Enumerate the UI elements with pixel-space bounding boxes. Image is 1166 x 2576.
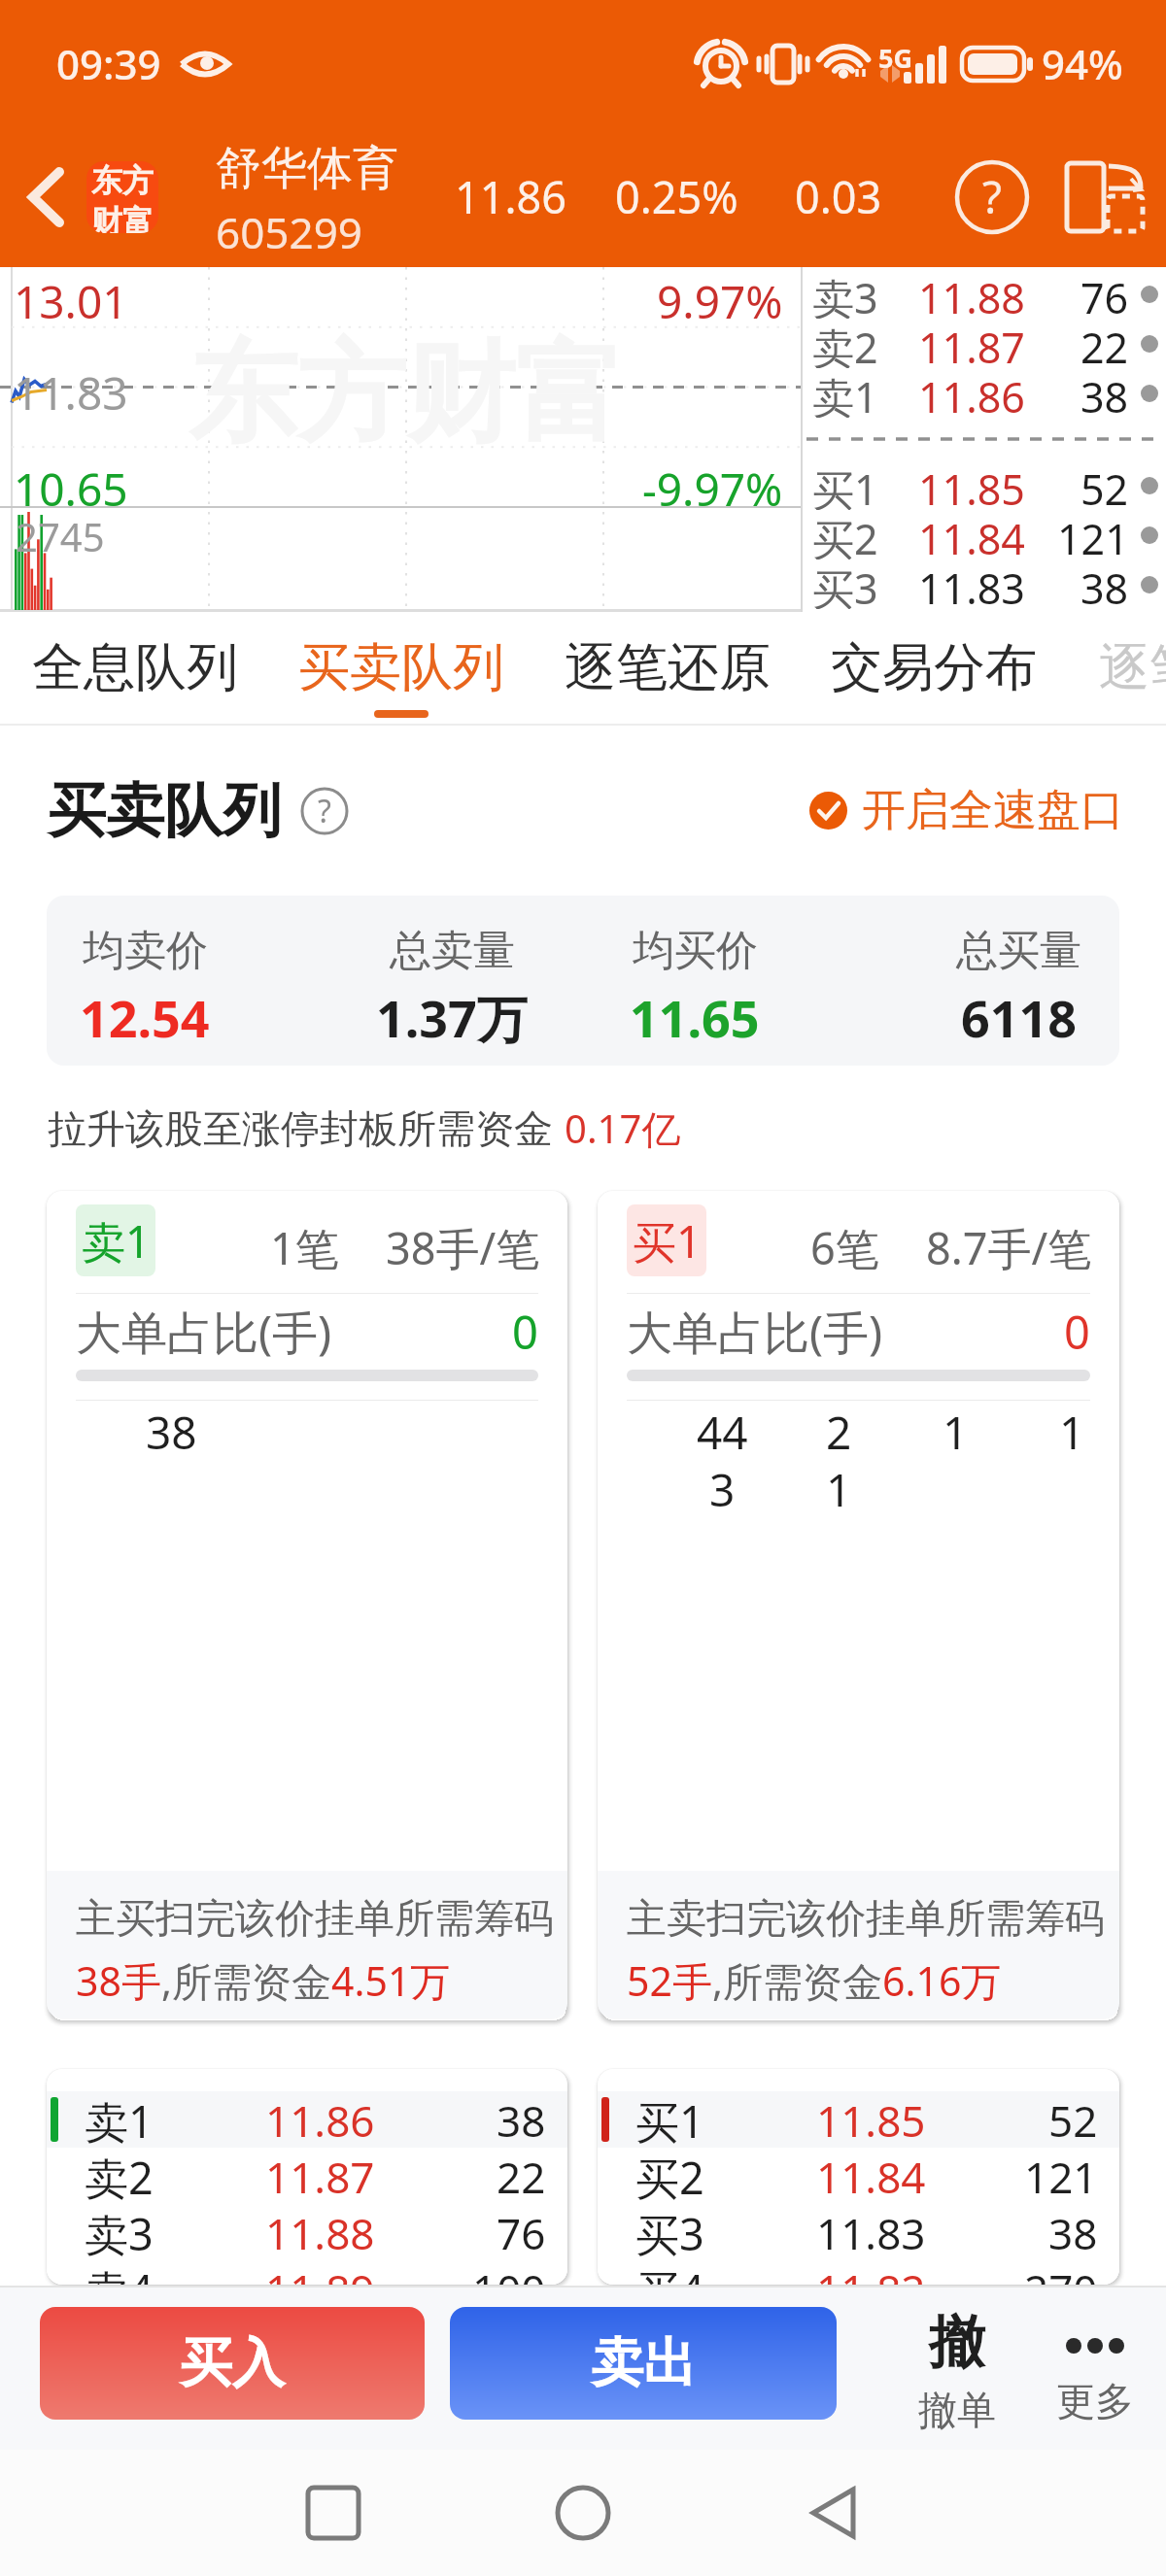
button[interactable]: 买2 (598, 2148, 1119, 2204)
button[interactable]: Back (0, 126, 91, 267)
button[interactable]: 卖出 (450, 2307, 837, 2420)
staticText: 22 (497, 2148, 546, 2204)
staticText: 6.16万 (882, 1953, 1002, 2008)
staticText: 卖2 (85, 2148, 154, 2204)
staticText: 大单占比(手) (627, 1301, 883, 1363)
button[interactable]: 逐笔 (1099, 612, 1166, 724)
staticText: 财富 (91, 202, 154, 233)
staticText: 38手 (76, 1953, 161, 2008)
staticText: 11.87 (918, 319, 1025, 368)
staticText: 撤单 (918, 2386, 996, 2434)
staticText: 0.03 (795, 167, 882, 226)
staticText: 11.84 (918, 510, 1025, 559)
staticText: 买4 (635, 2260, 704, 2285)
button[interactable]: Back (770, 2450, 896, 2576)
staticText: 11.83 (14, 362, 128, 424)
staticText: 更多 (1056, 2377, 1134, 2425)
button[interactable]: 买4 (598, 2260, 1119, 2285)
staticText: 0.17亿 (565, 1102, 681, 1155)
staticText: 9.97% (657, 271, 783, 332)
staticText: 12.54 (80, 983, 210, 1052)
staticText: 卖3 (812, 269, 878, 319)
staticText: 11.89 (265, 2260, 375, 2285)
staticText: 11.86 (918, 368, 1025, 418)
button[interactable]: 卖2 (47, 2148, 567, 2204)
staticText: 11.88 (265, 2204, 375, 2260)
staticText: 大单占比(手) (76, 1301, 332, 1363)
staticText: 11.88 (918, 269, 1025, 319)
staticText: 6118 (961, 983, 1077, 1052)
staticText: 11.86 (455, 167, 567, 226)
staticText: 东方 (91, 161, 154, 200)
staticText: 11.83 (816, 2204, 926, 2260)
staticText: 卖2 (812, 319, 878, 368)
button[interactable]: 交易分布 (831, 612, 1037, 724)
staticText: 38 (146, 1402, 197, 1459)
staticText: 94% (1042, 36, 1123, 91)
staticText: 09:39 (56, 36, 161, 91)
staticText: 52手 (627, 1953, 712, 2008)
staticText: 0 (512, 1301, 538, 1363)
button[interactable]: 逐笔还原 (565, 612, 771, 724)
button[interactable]: 买1 (598, 2091, 1119, 2148)
button[interactable]: 撤 (894, 2288, 1020, 2450)
staticText: 主卖扫完该价挂单所需筹码 (627, 1894, 1105, 1945)
staticText: 13.01 (14, 271, 128, 332)
staticText: 1.37万 (376, 983, 528, 1052)
staticText: 270 (1024, 2260, 1098, 2285)
staticText: 逐笔 (1099, 636, 1166, 700)
staticText: 5G (878, 40, 912, 76)
staticText: 22 (1080, 319, 1129, 368)
staticText: 11.65 (630, 983, 760, 1052)
staticText: 买卖队列 (298, 635, 504, 700)
button[interactable]: Info (300, 787, 349, 835)
button[interactable]: Recents (270, 2450, 396, 2576)
button[interactable]: 买3 (598, 2204, 1119, 2260)
staticText: 买2 (635, 2148, 704, 2204)
staticText: 38 (497, 2091, 546, 2148)
button[interactable]: Split screen (1049, 126, 1158, 267)
staticText: 0 (1064, 1301, 1090, 1363)
button[interactable]: East Money (86, 161, 158, 233)
staticText: 东方财富 (189, 325, 624, 462)
staticText: 买卖队列 (48, 774, 281, 848)
staticText: 全息队列 (32, 635, 238, 700)
staticText: 撤 (929, 2307, 985, 2378)
button[interactable]: 卖4 (47, 2260, 567, 2285)
button[interactable]: Help (934, 126, 1050, 267)
staticText: 卖4 (85, 2260, 154, 2285)
button[interactable]: 买入 (40, 2307, 425, 2420)
button[interactable]: 买1 (803, 460, 1166, 510)
button[interactable]: More (1032, 2288, 1158, 2450)
staticText: 0.25% (615, 167, 738, 226)
staticText: 均卖价 (83, 925, 208, 977)
staticText: 买3 (635, 2204, 704, 2260)
button[interactable]: 买卖队列 (298, 612, 504, 724)
staticText: 卖3 (85, 2204, 154, 2260)
staticText: 拉升该股至涨停封板所需资金 (48, 1104, 553, 1153)
staticText: 52 (1048, 2091, 1098, 2148)
staticText: 1 (1059, 1402, 1085, 1459)
staticText: 11.82 (816, 2260, 926, 2285)
staticText: 卖1 (82, 1211, 151, 1271)
button[interactable]: 卖3 (803, 269, 1166, 319)
button[interactable]: 卖1 (47, 2091, 567, 2148)
button[interactable]: 全息队列 (32, 612, 238, 724)
staticText: 1 (943, 1402, 969, 1459)
staticText: 8.7手/笔 (926, 1218, 1092, 1277)
staticText: 2 (826, 1402, 852, 1459)
staticText: 1笔 (270, 1218, 339, 1277)
button[interactable]: 卖3 (47, 2204, 567, 2260)
button[interactable]: 开启全速盘口 (809, 783, 1124, 838)
staticText: 605299 (216, 203, 363, 261)
staticText: 3 (709, 1459, 736, 1516)
staticText: 买3 (812, 559, 878, 609)
staticText: ? (318, 790, 331, 832)
button[interactable]: 卖2 (803, 319, 1166, 368)
button[interactable]: 买3 (803, 559, 1166, 609)
button[interactable]: 卖1 (803, 368, 1166, 418)
button[interactable]: 买2 (803, 510, 1166, 559)
button[interactable]: Home (520, 2450, 646, 2576)
staticText: 卖1 (812, 368, 878, 418)
staticText: ,所需资金 (712, 1953, 882, 2008)
